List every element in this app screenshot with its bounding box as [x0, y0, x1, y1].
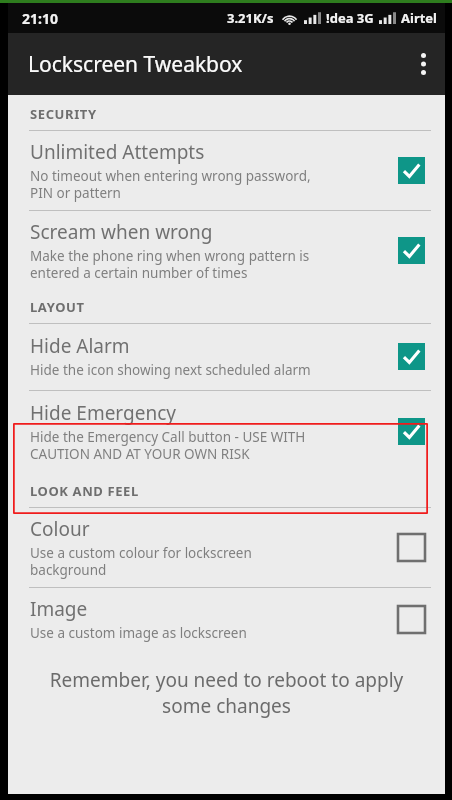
staticText: Hide Emergency — [30, 400, 176, 426]
staticText: Use a custom image as lockscreen — [30, 624, 247, 642]
button[interactable]: Colour — [8, 508, 445, 587]
staticText: No timeout when entering wrong password,… — [30, 167, 311, 202]
staticText: Airtel — [401, 9, 437, 27]
staticText: Hide the Emergency Call button - USE WIT… — [30, 428, 306, 463]
button[interactable]: Unlimited Attempts — [8, 131, 445, 210]
staticText: Make the phone ring when wrong pattern i… — [30, 247, 310, 282]
staticText: 21:10 — [22, 9, 58, 28]
staticText: Use a custom colour for lockscreen backg… — [30, 544, 252, 579]
staticText: Lockscreen Tweakbox — [28, 50, 243, 79]
button[interactable]: Hide Emergency — [8, 391, 445, 472]
button[interactable]: Image — [8, 588, 445, 650]
staticText: LAYOUT — [30, 298, 85, 316]
staticText: !dea 3G — [326, 9, 374, 27]
staticText: LOOK AND FEEL — [30, 482, 139, 500]
button[interactable]: Hide Alarm — [8, 324, 445, 390]
staticText: Image — [30, 596, 88, 622]
staticText: SECURITY — [30, 105, 97, 123]
staticText: Remember, you need to reboot to apply so… — [26, 667, 427, 718]
staticText: Scream when wrong — [30, 219, 213, 245]
staticText: Unlimited Attempts — [30, 139, 205, 165]
staticText: Hide Alarm — [30, 333, 130, 359]
button[interactable]: More options — [401, 42, 445, 86]
button[interactable]: Scream when wrong — [8, 211, 445, 288]
staticText: 3.21K/s — [227, 9, 274, 27]
staticText: Hide the icon showing next scheduled ala… — [30, 361, 311, 379]
staticText: Colour — [30, 516, 90, 542]
